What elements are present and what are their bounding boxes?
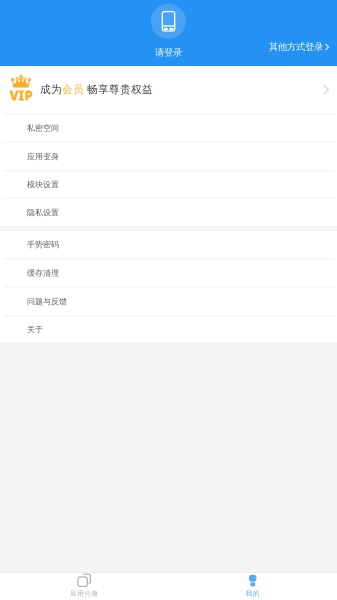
staticText: 应用分身	[70, 589, 98, 598]
staticText: 请登录	[155, 47, 182, 58]
button[interactable]: 我的	[168, 571, 337, 600]
staticText: 模块设置	[27, 180, 59, 189]
button[interactable]: 缓存清理	[0, 260, 337, 288]
staticText: 其他方式登录	[269, 41, 323, 53]
staticText: VIP	[9, 86, 32, 104]
button[interactable]: 其他方式登录	[261, 37, 337, 57]
button[interactable]: 手势密码	[0, 231, 337, 260]
button[interactable]: 模块设置	[0, 172, 337, 199]
button[interactable]: 应用变身	[0, 143, 337, 172]
staticText: 私密空间	[27, 123, 59, 133]
staticText: 畅享尊贵权益	[84, 83, 153, 96]
staticText: 成为	[40, 83, 62, 96]
staticText: 隐私设置	[27, 208, 59, 217]
staticText: 会员	[62, 83, 84, 96]
button[interactable]: 关于	[0, 317, 337, 342]
staticText: 关于	[27, 325, 43, 334]
staticText: 我的	[246, 589, 260, 598]
button[interactable]: 问题与反馈	[0, 288, 337, 317]
button[interactable]: 隐私设置	[0, 199, 337, 226]
button[interactable]: 应用分身	[0, 571, 168, 600]
button[interactable]: 私密空间	[0, 115, 337, 143]
staticText: 手势密码	[27, 240, 59, 249]
staticText: 应用变身	[27, 152, 59, 161]
staticText: 缓存清理	[27, 268, 59, 278]
staticText: 问题与反馈	[27, 297, 67, 306]
button[interactable]: VIP	[0, 66, 337, 115]
